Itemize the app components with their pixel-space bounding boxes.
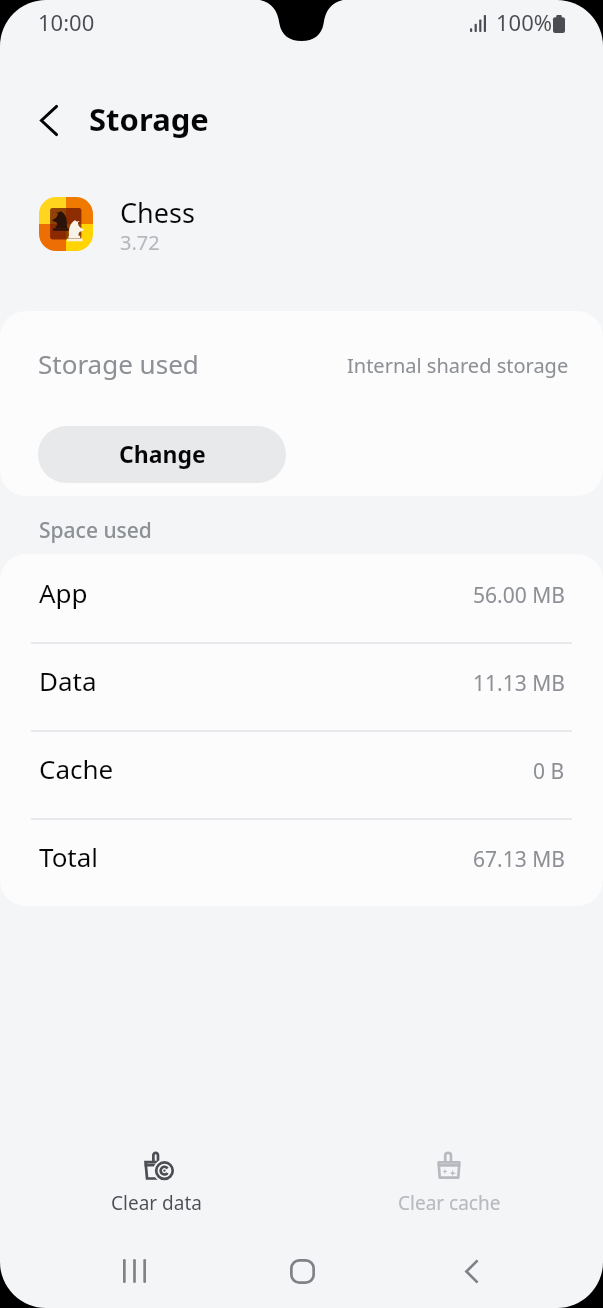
button[interactable]: Clear data — [0, 1136, 301, 1238]
staticText: Total — [39, 839, 99, 874]
staticText: 10:00 — [38, 7, 95, 37]
staticText: 0 B — [533, 757, 565, 786]
staticText: Chess — [120, 194, 195, 231]
button[interactable]: Data — [0, 642, 603, 730]
button[interactable]: App — [0, 554, 603, 642]
button[interactable]: Total — [0, 818, 603, 906]
staticText: Clear cache — [398, 1190, 501, 1216]
button[interactable]: Navigate up — [23, 94, 75, 146]
button[interactable]: Home — [274, 1243, 330, 1299]
staticText: Storage used — [38, 346, 199, 381]
button[interactable]: Change — [38, 426, 286, 483]
button[interactable]: Recent apps — [106, 1243, 162, 1299]
staticText: Cache — [39, 751, 114, 786]
staticText: Data — [39, 663, 97, 698]
staticText: Space used — [39, 516, 152, 545]
staticText: 3.72 — [120, 229, 160, 256]
staticText: 67.13 MB — [473, 845, 565, 874]
staticText: 56.00 MB — [473, 581, 565, 610]
button[interactable]: Back — [444, 1243, 500, 1299]
staticText: Internal shared storage — [347, 352, 569, 379]
staticText: 11.13 MB — [473, 669, 565, 698]
staticText: Storage — [89, 98, 209, 140]
staticText: Clear data — [111, 1190, 202, 1216]
staticText: App — [39, 575, 88, 610]
button[interactable]: Cache — [0, 730, 603, 818]
staticText: Change — [119, 438, 206, 469]
button[interactable]: Clear cache — [302, 1136, 603, 1238]
staticText: 100% — [496, 7, 553, 37]
